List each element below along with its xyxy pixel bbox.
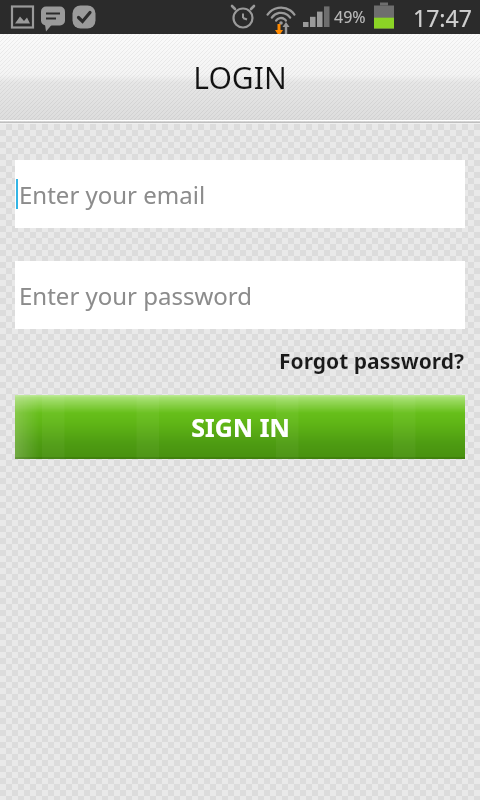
staticText: 49%	[334, 6, 366, 28]
staticText: Forgot password?	[279, 347, 465, 376]
staticText: SIGN IN	[191, 410, 290, 444]
staticText: 17:47	[413, 2, 472, 33]
staticText: LOGIN	[193, 57, 287, 98]
button[interactable]: Forgot password?	[279, 345, 480, 378]
staticText: Enter your email	[19, 178, 206, 211]
button[interactable]: SIGN IN	[15, 395, 465, 459]
button[interactable]: Enter your email	[15, 160, 465, 228]
button[interactable]: Enter your password	[15, 261, 465, 329]
staticText: Enter your password	[19, 279, 253, 312]
